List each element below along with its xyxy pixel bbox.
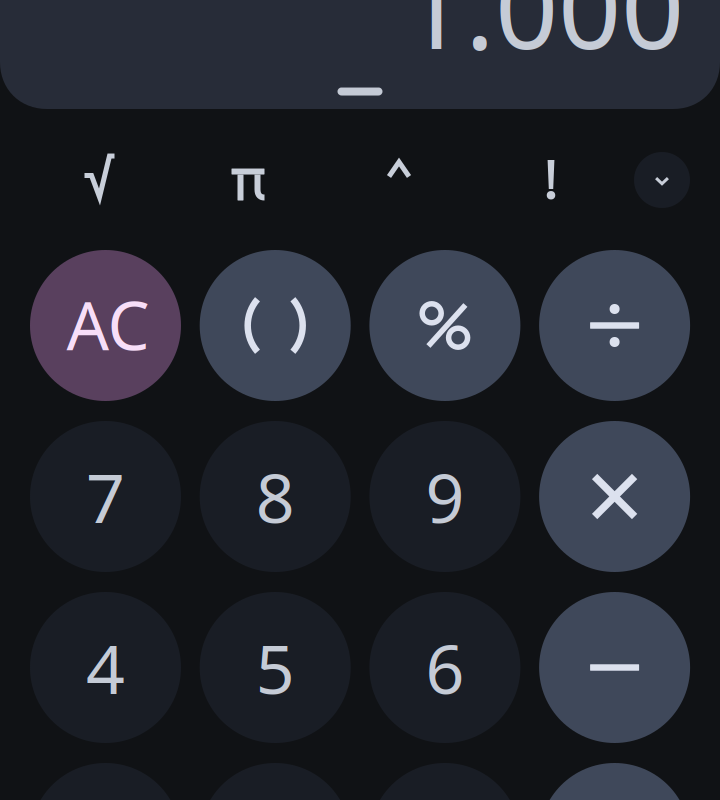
- button[interactable]: Factorial: [491, 130, 611, 230]
- button[interactable]: 1: [30, 763, 181, 800]
- staticText: AC: [66, 280, 149, 369]
- button[interactable]: Divide: [539, 250, 690, 401]
- button[interactable]: AC: [30, 250, 181, 401]
- button[interactable]: 9: [369, 421, 520, 572]
- button[interactable]: Parentheses: [200, 250, 351, 401]
- button[interactable]: 5: [200, 592, 351, 743]
- staticText: 9: [425, 451, 464, 542]
- button[interactable]: 3: [369, 763, 520, 800]
- button[interactable]: Percent: [369, 250, 520, 401]
- button[interactable]: 7: [30, 421, 181, 572]
- staticText: 7: [86, 451, 125, 542]
- button[interactable]: Power: [339, 130, 459, 230]
- button[interactable]: 4: [30, 592, 181, 743]
- button[interactable]: Pi: [189, 130, 309, 230]
- button[interactable]: Square root: [39, 130, 159, 230]
- staticText: 6: [425, 622, 464, 713]
- button[interactable]: Multiply: [539, 421, 690, 572]
- staticText: 1.000: [402, 0, 684, 79]
- button[interactable]: Add: [539, 763, 690, 800]
- button[interactable]: Subtract: [539, 592, 690, 743]
- staticText: 8: [256, 451, 295, 542]
- staticText: 5: [256, 622, 295, 713]
- button[interactable]: 2: [200, 763, 351, 800]
- button[interactable]: 8: [200, 421, 351, 572]
- button[interactable]: More functions: [634, 152, 690, 208]
- staticText: 4: [86, 622, 125, 713]
- button[interactable]: 6: [369, 592, 520, 743]
